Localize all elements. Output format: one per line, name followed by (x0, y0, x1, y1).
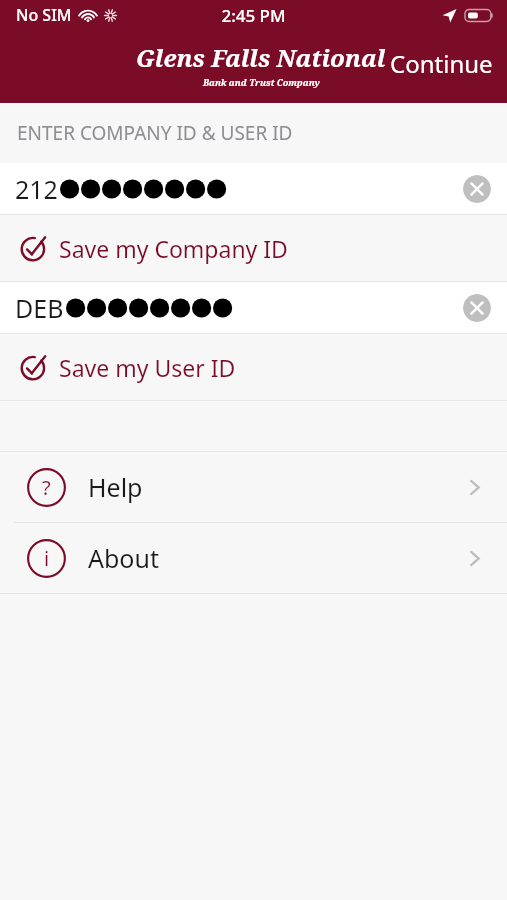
button[interactable]: Clear User ID (463, 294, 491, 322)
staticText: 2:45 PM (221, 4, 286, 27)
button[interactable]: Continue (376, 38, 507, 89)
button[interactable]: 212 (0, 163, 507, 214)
staticText: 212 (15, 172, 58, 206)
staticText: Save my User ID (59, 352, 236, 383)
staticText: ? (42, 474, 51, 501)
staticText: Continue (390, 47, 493, 80)
button[interactable]: Clear Company ID (463, 175, 491, 203)
staticText: ENTER COMPANY ID & USER ID (17, 120, 293, 146)
staticText: DEB (15, 291, 64, 325)
staticText: No SIM (16, 4, 72, 26)
staticText: i (44, 545, 50, 572)
button[interactable]: i (0, 523, 507, 593)
staticText: Help (88, 470, 464, 504)
staticText: Glens Falls National (136, 41, 386, 74)
button[interactable]: Save my Company ID (0, 215, 507, 281)
staticText: Bank and Trust Company (203, 76, 320, 88)
button[interactable]: DEB (0, 282, 507, 333)
staticText: Save my Company ID (59, 233, 288, 264)
staticText: About (88, 541, 464, 575)
button[interactable]: ? (0, 452, 507, 522)
button[interactable]: Save my User ID (0, 334, 507, 400)
